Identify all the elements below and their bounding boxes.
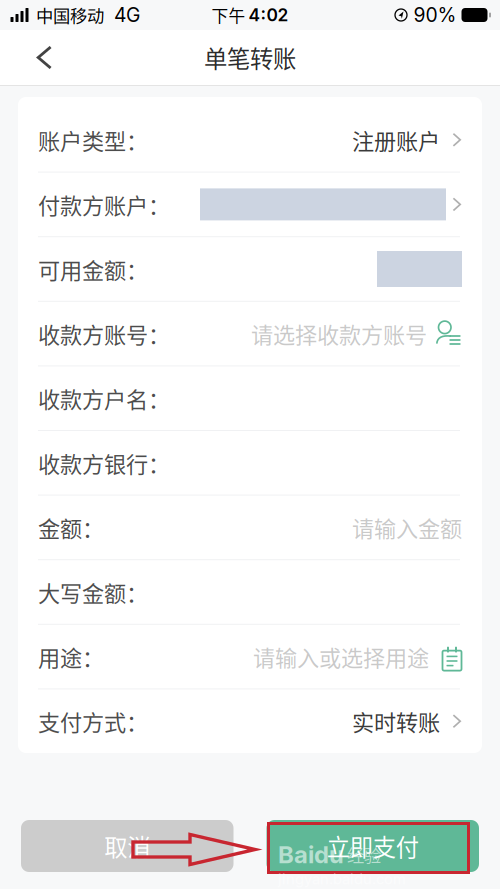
button[interactable]: 用途： [18,625,482,688]
staticText: 单笔转账 [204,41,296,74]
staticText: jingyan.baidu.com [278,870,406,888]
staticText: 支付方式： [38,705,148,737]
button[interactable]: 返回 [16,30,72,85]
staticText: 中国移动 [36,2,104,28]
staticText: 4:02 [248,4,288,25]
staticText: 收款方账号： [38,318,170,350]
staticText: 实时转账 [352,705,440,737]
staticText: 用途： [38,641,104,673]
staticText: 90% [413,3,456,27]
staticText: 大写金额： [38,576,148,608]
staticText: 经验 [347,842,381,867]
button[interactable]: 取消 [21,820,233,872]
staticText: 金额： [38,511,104,543]
staticText: 立即支付 [327,829,419,863]
button[interactable]: 收款方账号： [18,302,482,365]
staticText: 可用金额： [38,253,148,285]
staticText: Baidu [278,840,344,869]
staticText: 下午 [211,3,245,27]
staticText: 注册账户 [352,124,440,156]
button[interactable]: 立即支付 [266,820,479,872]
staticText: 取消 [104,829,150,863]
button[interactable]: 账户类型： [18,108,482,172]
button[interactable]: 支付方式： [18,689,482,753]
staticText: 4G [114,3,140,27]
staticText: 请输入或选择用途 [253,641,429,673]
staticText: 请输入金额 [352,511,462,543]
staticText: 付款方账户： [38,188,170,220]
staticText: 收款方户名： [38,382,170,414]
staticText: 请选择收款方账号 [251,318,427,350]
button[interactable]: 付款方账户： [18,173,482,236]
staticText: 收款方银行： [38,447,170,479]
staticText: 账户类型： [38,124,148,156]
